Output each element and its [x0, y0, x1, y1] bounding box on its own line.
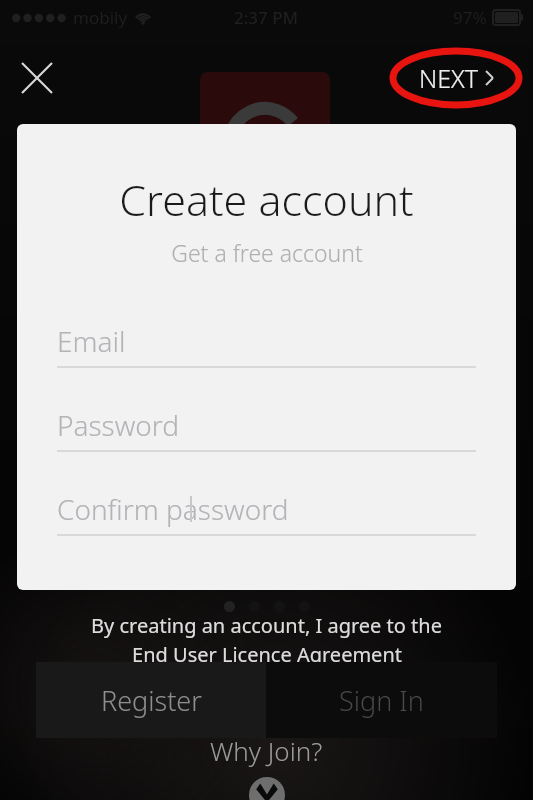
staticText: Confirm password	[57, 490, 289, 528]
staticText: Register	[101, 682, 202, 719]
staticText: 2:37 PM	[234, 6, 299, 29]
staticText: Why Join?	[210, 733, 323, 768]
button[interactable]: Register	[36, 662, 266, 738]
staticText: Get a free account	[171, 237, 363, 268]
button[interactable]: Email	[57, 322, 476, 368]
staticText: mobily	[73, 6, 128, 29]
button[interactable]: Sign In	[266, 662, 497, 738]
button[interactable]: Close	[12, 53, 62, 103]
staticText: NEXT	[419, 61, 478, 95]
button[interactable]: Expand	[249, 777, 285, 800]
staticText: Create account	[119, 170, 414, 229]
staticText: Email	[57, 322, 126, 360]
button[interactable]: Why Join?	[210, 733, 323, 768]
button[interactable]: By creating an account, I agree to the	[0, 612, 533, 668]
button[interactable]: Password	[57, 406, 476, 452]
button[interactable]: Confirm password	[57, 490, 476, 536]
staticText: 97%	[453, 6, 487, 29]
staticText: By creating an account, I agree to the	[91, 612, 442, 639]
staticText: End User Licence Agreement	[132, 641, 402, 668]
staticText: Password	[57, 406, 180, 444]
staticText: Sign In	[339, 682, 424, 719]
button[interactable]: NEXT	[391, 47, 521, 109]
